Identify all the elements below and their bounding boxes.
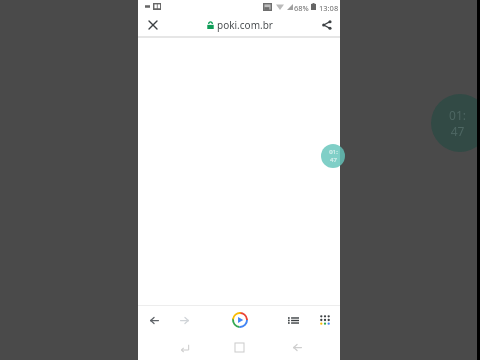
button[interactable]: Home (226, 334, 252, 360)
button[interactable]: Share (314, 13, 339, 36)
button[interactable]: Google Play (227, 306, 253, 334)
button[interactable]: Back (141, 306, 167, 334)
button[interactable]: Forward (171, 306, 197, 334)
button[interactable]: Apps (312, 306, 338, 334)
staticText: 13:08 (319, 3, 339, 13)
button[interactable]: Recents (172, 334, 198, 360)
button[interactable]: Reading list (280, 306, 306, 334)
staticText: 01: 47 (449, 107, 466, 140)
staticText: 01: 47 (329, 148, 338, 164)
staticText: 68% (294, 3, 309, 13)
button[interactable]: Close (140, 13, 165, 36)
button[interactable]: Back (284, 334, 310, 360)
button[interactable]: Recording timer (431, 94, 480, 152)
staticText: poki.com.br (217, 18, 273, 32)
